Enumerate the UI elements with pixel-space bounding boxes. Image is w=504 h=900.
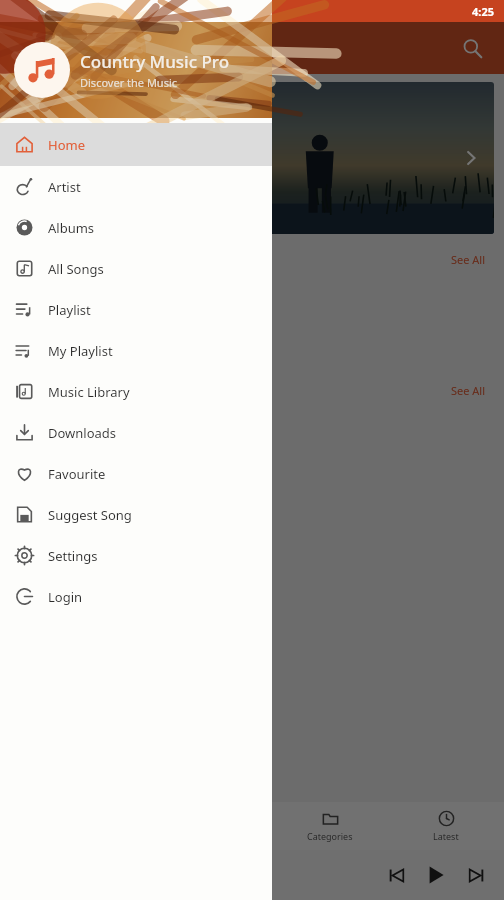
- staticText: Home: [48, 136, 85, 154]
- button[interactable]: Next: [10, 82, 494, 234]
- staticText: Country Music Pro: [80, 50, 230, 73]
- staticText: Albums: [48, 219, 95, 237]
- button[interactable]: Search: [452, 28, 492, 68]
- button[interactable]: Next: [456, 143, 486, 173]
- staticText: 4:25: [472, 4, 494, 19]
- staticText: All Songs: [48, 260, 104, 278]
- button[interactable]: Music Library: [0, 371, 272, 412]
- button[interactable]: [0, 0, 504, 900]
- staticText: Downloads: [48, 424, 117, 442]
- button[interactable]: See All: [447, 379, 490, 402]
- staticText: Login: [48, 588, 83, 606]
- button[interactable]: Albums: [0, 207, 272, 248]
- staticText: New Releases: [14, 251, 100, 269]
- staticText: Top Artists: [14, 382, 80, 400]
- staticText: My Playlist: [48, 342, 113, 360]
- button[interactable]: next: [456, 855, 496, 895]
- button[interactable]: See All: [447, 248, 490, 271]
- button[interactable]: prev: [376, 855, 416, 895]
- button[interactable]: Suggest Song: [0, 494, 272, 535]
- button[interactable]: Home: [0, 123, 272, 166]
- staticText: Arijit Singh: [25, 496, 77, 510]
- staticText: Playlist: [48, 301, 91, 319]
- button[interactable]: Login: [0, 576, 272, 617]
- button[interactable]: Favourite: [0, 453, 272, 494]
- button[interactable]: Artist: [0, 166, 272, 207]
- button[interactable]: Downloads: [0, 412, 272, 453]
- button[interactable]: All Songs: [0, 248, 272, 289]
- staticText: Discover the Music: [80, 75, 178, 90]
- button[interactable]: Categories: [272, 802, 388, 850]
- button[interactable]: Settings: [0, 535, 272, 576]
- button[interactable]: Latest: [388, 802, 504, 850]
- staticText: Categories: [307, 830, 353, 842]
- button[interactable]: Playlist: [0, 289, 272, 330]
- staticText: Artist: [48, 178, 81, 196]
- staticText: See All: [451, 383, 486, 398]
- staticText: Favourite: [48, 465, 106, 483]
- button[interactable]: play: [416, 855, 456, 895]
- staticText: Music Library: [48, 383, 130, 401]
- staticText: Settings: [48, 547, 98, 565]
- staticText: See All: [451, 252, 486, 267]
- staticText: Latest: [433, 830, 459, 842]
- staticText: Suggest Song: [48, 506, 132, 524]
- button[interactable]: My Playlist: [0, 330, 272, 371]
